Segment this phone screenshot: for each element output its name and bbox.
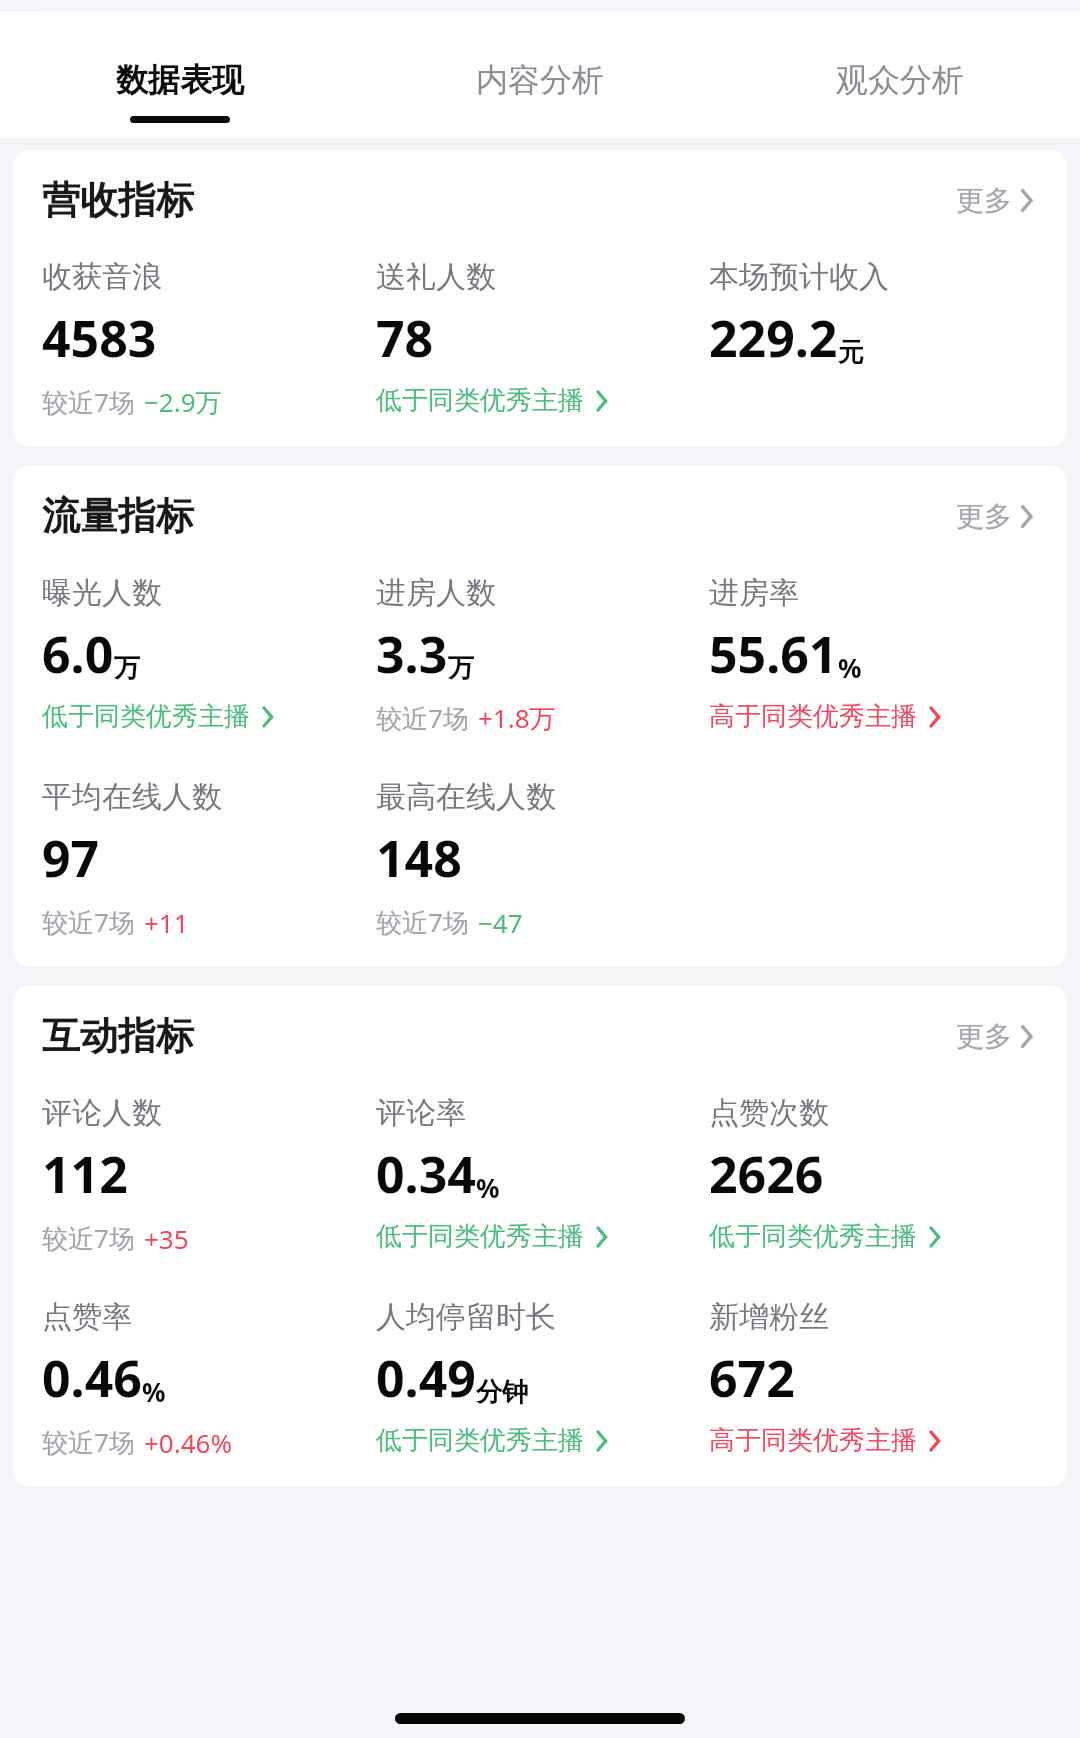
staticText: 672 bbox=[709, 1344, 795, 1412]
staticText: 本场预计收入 bbox=[709, 258, 889, 296]
staticText: 流量指标 bbox=[42, 492, 194, 540]
staticText: 较近7场 bbox=[376, 700, 469, 736]
staticText: 最高在线人数 bbox=[376, 778, 556, 816]
button[interactable]: 点赞率 bbox=[42, 1298, 376, 1460]
staticText: 0.46 bbox=[42, 1344, 142, 1412]
staticText: +1.8万 bbox=[478, 700, 556, 736]
other: More bbox=[1016, 500, 1038, 533]
staticText: 万 bbox=[448, 652, 474, 685]
staticText: 分钟 bbox=[476, 1376, 528, 1409]
button[interactable]: 点赞次数 bbox=[709, 1094, 1042, 1253]
staticText: 148 bbox=[376, 824, 462, 892]
staticText: 曝光人数 bbox=[42, 574, 162, 612]
staticText: 4583 bbox=[42, 304, 157, 372]
staticText: 新增粉丝 bbox=[709, 1298, 829, 1336]
staticText: 97 bbox=[42, 824, 100, 892]
staticText: 低于同类优秀主播 bbox=[376, 384, 584, 417]
button[interactable]: 人均停留时长 bbox=[376, 1298, 709, 1457]
staticText: 高于同类优秀主播 bbox=[709, 700, 917, 733]
other: More bbox=[925, 1222, 945, 1252]
other: More bbox=[258, 702, 278, 732]
staticText: % bbox=[476, 1170, 500, 1205]
staticText: 点赞率 bbox=[42, 1298, 132, 1336]
staticText: 112 bbox=[42, 1140, 128, 1208]
staticText: 收获音浪 bbox=[42, 258, 162, 296]
staticText: +35 bbox=[144, 1221, 189, 1256]
other: More bbox=[1016, 1020, 1038, 1053]
button[interactable]: 最高在线人数 bbox=[376, 778, 709, 940]
staticText: 低于同类优秀主播 bbox=[376, 1424, 584, 1457]
staticText: 2626 bbox=[709, 1140, 824, 1208]
button[interactable]: 曝光人数 bbox=[42, 574, 376, 733]
staticText: 点赞次数 bbox=[709, 1094, 829, 1132]
other: More bbox=[592, 1222, 612, 1252]
staticText: 数据表现 bbox=[116, 60, 244, 100]
staticText: 万 bbox=[114, 652, 140, 685]
staticText: 较近7场 bbox=[42, 1220, 135, 1256]
button[interactable]: 平均在线人数 bbox=[42, 778, 376, 940]
button[interactable]: 进房人数 bbox=[376, 574, 709, 736]
staticText: 评论人数 bbox=[42, 1094, 162, 1132]
staticText: 更多 bbox=[956, 1019, 1012, 1054]
staticText: 78 bbox=[376, 304, 434, 372]
staticText: 较近7场 bbox=[42, 384, 135, 420]
staticText: 较近7场 bbox=[42, 1424, 135, 1460]
button[interactable]: 更多 bbox=[952, 179, 1042, 222]
staticText: 6.0 bbox=[42, 620, 114, 688]
button[interactable]: 新增粉丝 bbox=[709, 1298, 1042, 1457]
staticText: 较近7场 bbox=[376, 904, 469, 940]
staticText: 送礼人数 bbox=[376, 258, 496, 296]
staticText: 平均在线人数 bbox=[42, 778, 222, 816]
button[interactable]: 更多 bbox=[952, 1015, 1042, 1058]
staticText: 评论率 bbox=[376, 1094, 466, 1132]
staticText: 229.2 bbox=[709, 304, 838, 372]
staticText: 更多 bbox=[956, 183, 1012, 218]
staticText: 0.34 bbox=[376, 1140, 476, 1208]
staticText: −2.9万 bbox=[144, 384, 222, 420]
staticText: 人均停留时长 bbox=[376, 1298, 556, 1336]
button[interactable]: 本场预计收入 bbox=[709, 258, 1042, 372]
staticText: 元 bbox=[838, 336, 864, 369]
other: More bbox=[925, 1426, 945, 1456]
staticText: +11 bbox=[144, 905, 189, 940]
staticText: +0.46% bbox=[144, 1425, 233, 1460]
staticText: 低于同类优秀主播 bbox=[376, 1220, 584, 1253]
button[interactable]: 内容分析 bbox=[360, 12, 720, 138]
staticText: % bbox=[838, 650, 862, 685]
button[interactable]: 送礼人数 bbox=[376, 258, 709, 417]
staticText: 较近7场 bbox=[42, 904, 135, 940]
staticText: 观众分析 bbox=[836, 60, 964, 100]
staticText: 高于同类优秀主播 bbox=[709, 1424, 917, 1457]
staticText: 0.49 bbox=[376, 1344, 476, 1412]
staticText: −47 bbox=[478, 905, 523, 940]
staticText: 更多 bbox=[956, 499, 1012, 534]
other: More bbox=[592, 1426, 612, 1456]
staticText: 互动指标 bbox=[42, 1012, 194, 1060]
button[interactable]: 评论率 bbox=[376, 1094, 709, 1253]
button[interactable]: 进房率 bbox=[709, 574, 1042, 733]
button[interactable]: 更多 bbox=[952, 495, 1042, 538]
other: More bbox=[1016, 184, 1038, 217]
button[interactable]: 观众分析 bbox=[720, 12, 1080, 138]
staticText: 进房人数 bbox=[376, 574, 496, 612]
staticText: 低于同类优秀主播 bbox=[42, 700, 250, 733]
other: More bbox=[592, 386, 612, 416]
button[interactable]: 评论人数 bbox=[42, 1094, 376, 1256]
staticText: 进房率 bbox=[709, 574, 799, 612]
staticText: 55.61 bbox=[709, 620, 838, 688]
staticText: 营收指标 bbox=[42, 176, 194, 224]
button[interactable]: 收获音浪 bbox=[42, 258, 376, 420]
staticText: % bbox=[142, 1374, 166, 1409]
other: More bbox=[925, 702, 945, 732]
staticText: 内容分析 bbox=[476, 60, 604, 100]
staticText: 低于同类优秀主播 bbox=[709, 1220, 917, 1253]
button[interactable]: 数据表现 bbox=[0, 12, 360, 138]
staticText: 3.3 bbox=[376, 620, 448, 688]
